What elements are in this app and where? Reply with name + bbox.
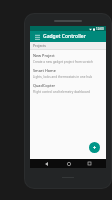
staticText: 12:00 [96,27,104,31]
button[interactable]: Add new project [89,142,100,153]
staticText: Lights, locks and thermostats in one hub [33,75,93,79]
staticText: Gadget Controller [43,33,86,40]
button[interactable]: Back [42,159,51,168]
staticText: New Project [33,53,55,58]
staticText: Flight control and telemetry dashboard [33,90,90,94]
staticText: Projects [33,43,46,48]
staticText: Create a new gadget project from scratch [33,60,94,64]
staticText: QuadCopter [33,83,56,88]
button[interactable]: Home [64,159,73,168]
button[interactable]: Open navigation drawer [33,33,41,41]
staticText: Smart Home [33,68,56,73]
button[interactable]: New Project [30,50,106,65]
button[interactable]: QuadCopter [30,80,106,95]
button[interactable]: Smart Home [30,65,106,80]
button[interactable]: Recent apps [85,159,94,168]
